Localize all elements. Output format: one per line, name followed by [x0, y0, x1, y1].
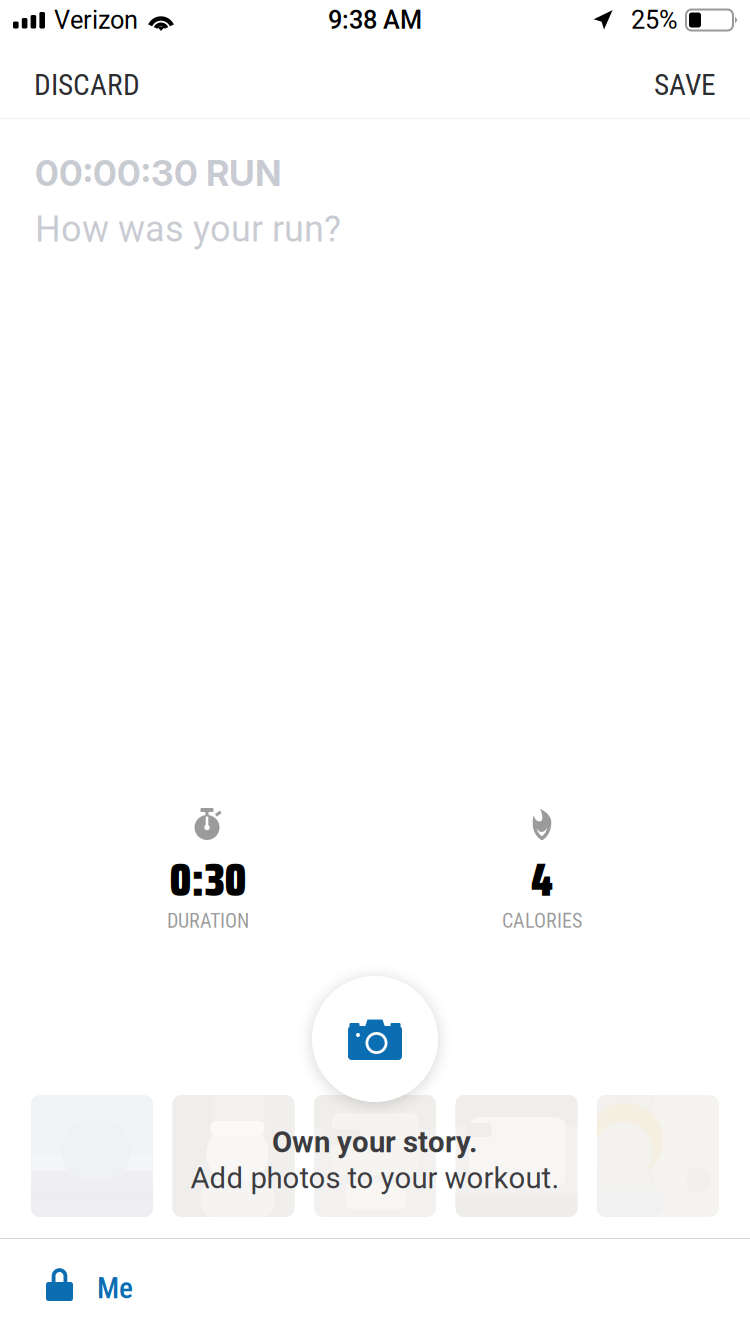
- button[interactable]: SAVE: [648, 61, 722, 109]
- button[interactable]: DISCARD: [28, 61, 146, 109]
- staticText: 4: [531, 844, 553, 916]
- staticText: Me: [97, 1271, 133, 1305]
- staticText: Verizon: [54, 5, 138, 35]
- staticText: SAVE: [654, 68, 716, 102]
- staticText: Add photos to your workout.: [190, 1161, 559, 1195]
- staticText: CALORIES: [502, 909, 582, 933]
- staticText: 9:38 AM: [328, 5, 422, 35]
- button[interactable]: Me: [42, 1254, 162, 1320]
- staticText: DISCARD: [34, 68, 140, 102]
- staticText: How was your run?: [35, 208, 341, 250]
- staticText: 00:00:30 RUN: [35, 151, 281, 195]
- staticText: 0:30: [169, 844, 246, 916]
- button[interactable]: Add photo: [312, 976, 438, 1102]
- staticText: Own your story.: [272, 1125, 478, 1159]
- staticText: 25%: [631, 5, 678, 35]
- staticText: DURATION: [167, 909, 249, 933]
